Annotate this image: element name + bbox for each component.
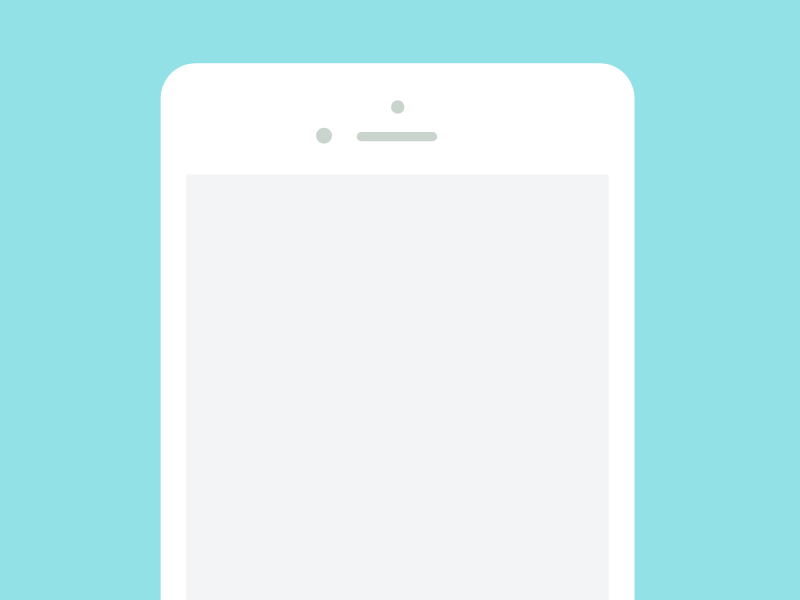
other: Proximity sensor [316,128,332,144]
other: Front camera [391,100,404,113]
other: Earpiece speaker [357,132,438,141]
